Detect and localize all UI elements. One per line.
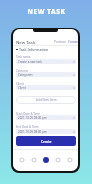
staticText: Categories	[18, 73, 33, 77]
staticText: Category	[16, 69, 29, 73]
staticText: New Task	[16, 39, 36, 45]
staticText: Start Date & Time	[16, 112, 40, 116]
button[interactable]: Home	[17, 155, 27, 165]
button[interactable]: Create a new task	[16, 59, 76, 64]
button[interactable]: 2021-10-05 08:00 pm	[16, 115, 76, 120]
staticText: Task Information	[19, 47, 49, 52]
staticText: Create	[68, 40, 78, 44]
staticText: Client	[16, 82, 24, 86]
button[interactable]: Create	[68, 40, 78, 44]
button[interactable]: Add New Item	[16, 96, 76, 104]
button[interactable]: Apps	[29, 155, 39, 165]
staticText: Create a new task	[18, 60, 42, 64]
button[interactable]: Client	[16, 85, 76, 90]
button[interactable]: Add	[41, 155, 51, 165]
button[interactable]: 2021-10-05 08:00 pm	[16, 129, 76, 134]
button[interactable]: Schedule	[53, 155, 63, 165]
staticText: Add New Item	[36, 98, 57, 102]
button[interactable]: Profile	[65, 155, 75, 165]
button[interactable]: Create	[16, 136, 76, 146]
staticText: 2021-10-05 08:00 pm	[18, 116, 47, 120]
staticText: Preview	[54, 40, 66, 44]
staticText: Task name	[16, 55, 31, 59]
staticText: 2021-10-05 08:00 pm	[18, 130, 47, 134]
staticText: NEW TASK	[27, 7, 66, 16]
button[interactable]: Preview	[54, 40, 66, 44]
staticText: End Date & Time	[16, 125, 39, 129]
staticText: Client	[18, 86, 26, 90]
button[interactable]: Categories	[16, 72, 76, 77]
staticText: Create	[41, 139, 52, 143]
